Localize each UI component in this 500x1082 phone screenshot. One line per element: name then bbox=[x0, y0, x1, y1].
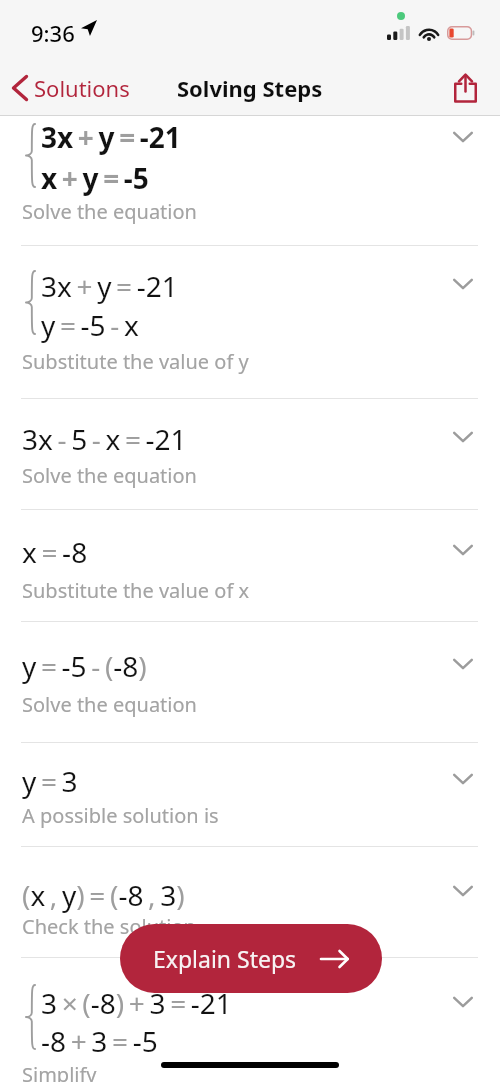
staticText: 3x - 5 - x = -21 bbox=[22, 420, 187, 458]
button[interactable]: Explain Steps bbox=[120, 924, 382, 993]
staticText: A possible solution is bbox=[22, 802, 219, 829]
button[interactable]: Share bbox=[447, 70, 483, 106]
staticText: Substitute the value of x bbox=[22, 577, 250, 604]
button[interactable]: Solutions bbox=[11, 73, 130, 103]
staticText: y = -5 - (-8) bbox=[22, 647, 147, 685]
staticText: Explain Steps bbox=[153, 943, 297, 974]
staticText: 3 × (-8) + 3 = -21 bbox=[41, 984, 232, 1022]
staticText: 3x + y = -21 bbox=[41, 118, 181, 156]
staticText: Substitute the value of y bbox=[22, 348, 249, 375]
button[interactable]: 3x + y = -21 bbox=[0, 116, 500, 246]
staticText: y = 3 bbox=[22, 762, 78, 800]
button[interactable]: 3x - 5 - x = -21 bbox=[0, 399, 500, 509]
button[interactable]: 3 × (-8) + 3 = -21 bbox=[0, 958, 500, 1082]
staticText: x = -8 bbox=[22, 533, 88, 571]
staticText: Solutions bbox=[34, 73, 130, 103]
staticText: Check the solution bbox=[22, 913, 196, 940]
button[interactable]: (x , y) = (-8 , 3) bbox=[0, 847, 500, 957]
button[interactable]: y = -5 - (-8) bbox=[0, 622, 500, 742]
staticText: 3x + y = -21 bbox=[41, 267, 178, 305]
staticText: 9:36 bbox=[31, 18, 75, 48]
button[interactable]: y = 3 bbox=[0, 743, 500, 846]
staticText: Solving Steps bbox=[177, 73, 323, 103]
staticText: Solve the equation bbox=[22, 462, 197, 489]
button[interactable]: 3x + y = -21 bbox=[0, 246, 500, 398]
staticText: -8 + 3 = -5 bbox=[41, 1022, 158, 1060]
staticText: Simplify bbox=[22, 1061, 97, 1082]
staticText: x + y = -5 bbox=[41, 159, 149, 197]
staticText: Solve the equation bbox=[22, 691, 197, 718]
staticText: Solve the equation bbox=[22, 198, 197, 225]
button[interactable]: x = -8 bbox=[0, 510, 500, 621]
staticText: y = -5 - x bbox=[41, 306, 139, 344]
staticText: (x , y) = (-8 , 3) bbox=[22, 876, 185, 914]
